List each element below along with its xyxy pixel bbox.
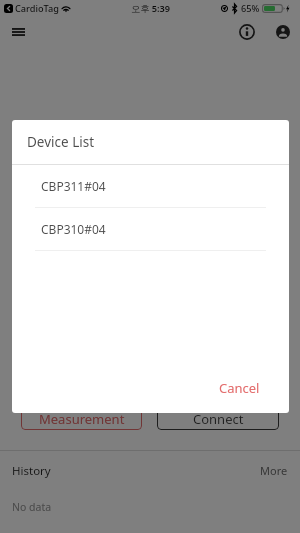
- button[interactable]: Measurement: [21, 408, 142, 430]
- staticText: Connect: [193, 410, 244, 428]
- staticText: History: [12, 463, 51, 479]
- button[interactable]: CBP311#04: [12, 165, 289, 208]
- button[interactable]: CBP310#04: [12, 208, 289, 251]
- staticText: CBP311#04: [41, 178, 106, 194]
- button[interactable]: More: [260, 463, 288, 478]
- staticText: Measurement: [39, 410, 125, 428]
- button[interactable]: Connect: [157, 408, 279, 430]
- button[interactable]: Account: [269, 18, 297, 46]
- staticText: More: [260, 463, 288, 478]
- staticText: Device List: [27, 133, 95, 151]
- button[interactable]: Info: [233, 18, 261, 46]
- button[interactable]: Menu: [4, 18, 32, 46]
- staticText: Cancel: [219, 379, 260, 397]
- button[interactable]: Cancel: [190, 372, 289, 404]
- staticText: CardioTag: [15, 2, 59, 15]
- staticText: 오후 5:39: [131, 2, 171, 15]
- staticText: CBP310#04: [41, 221, 106, 237]
- staticText: No data: [12, 500, 52, 514]
- staticText: 65%: [241, 2, 260, 15]
